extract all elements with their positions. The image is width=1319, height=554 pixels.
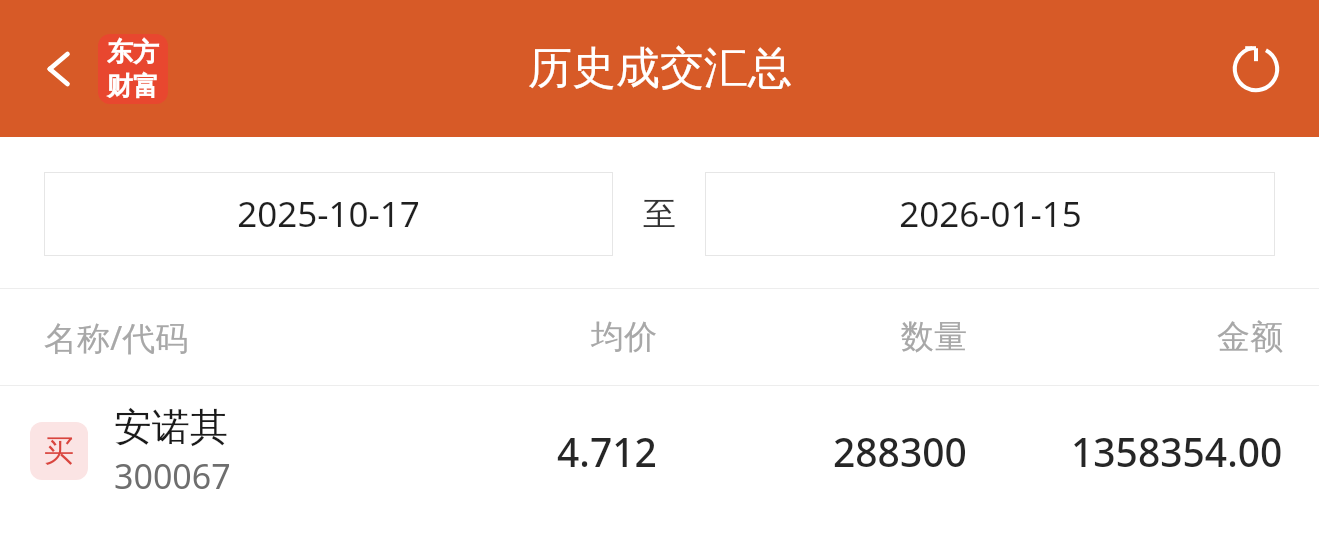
staticText: 金额 [1217, 316, 1283, 358]
button[interactable]: 2026-01-15 [705, 172, 1275, 256]
staticText: 东方 [107, 36, 159, 69]
staticText: 4.712 [557, 425, 657, 478]
staticText: 2025-10-17 [237, 190, 420, 238]
button[interactable]: 2025-10-17 [44, 172, 613, 256]
button[interactable]: Back [24, 33, 96, 105]
button[interactable]: 东方财富 [98, 34, 168, 104]
staticText: 300067 [114, 453, 231, 499]
staticText: 288300 [833, 425, 967, 478]
staticText: 1358354.00 [1071, 425, 1283, 478]
button[interactable]: 买 [0, 386, 1319, 516]
staticText: 数量 [901, 316, 967, 358]
staticText: 财富 [107, 70, 159, 103]
staticText: 均价 [591, 316, 657, 358]
staticText: 2026-01-15 [899, 190, 1082, 238]
button[interactable]: Refresh [1215, 28, 1297, 110]
staticText: 历史成交汇总 [528, 41, 792, 96]
staticText: 至 [643, 193, 676, 235]
staticText: 安诺其 [114, 403, 228, 451]
staticText: 买 [44, 432, 74, 470]
staticText: 名称/代码 [44, 315, 189, 360]
